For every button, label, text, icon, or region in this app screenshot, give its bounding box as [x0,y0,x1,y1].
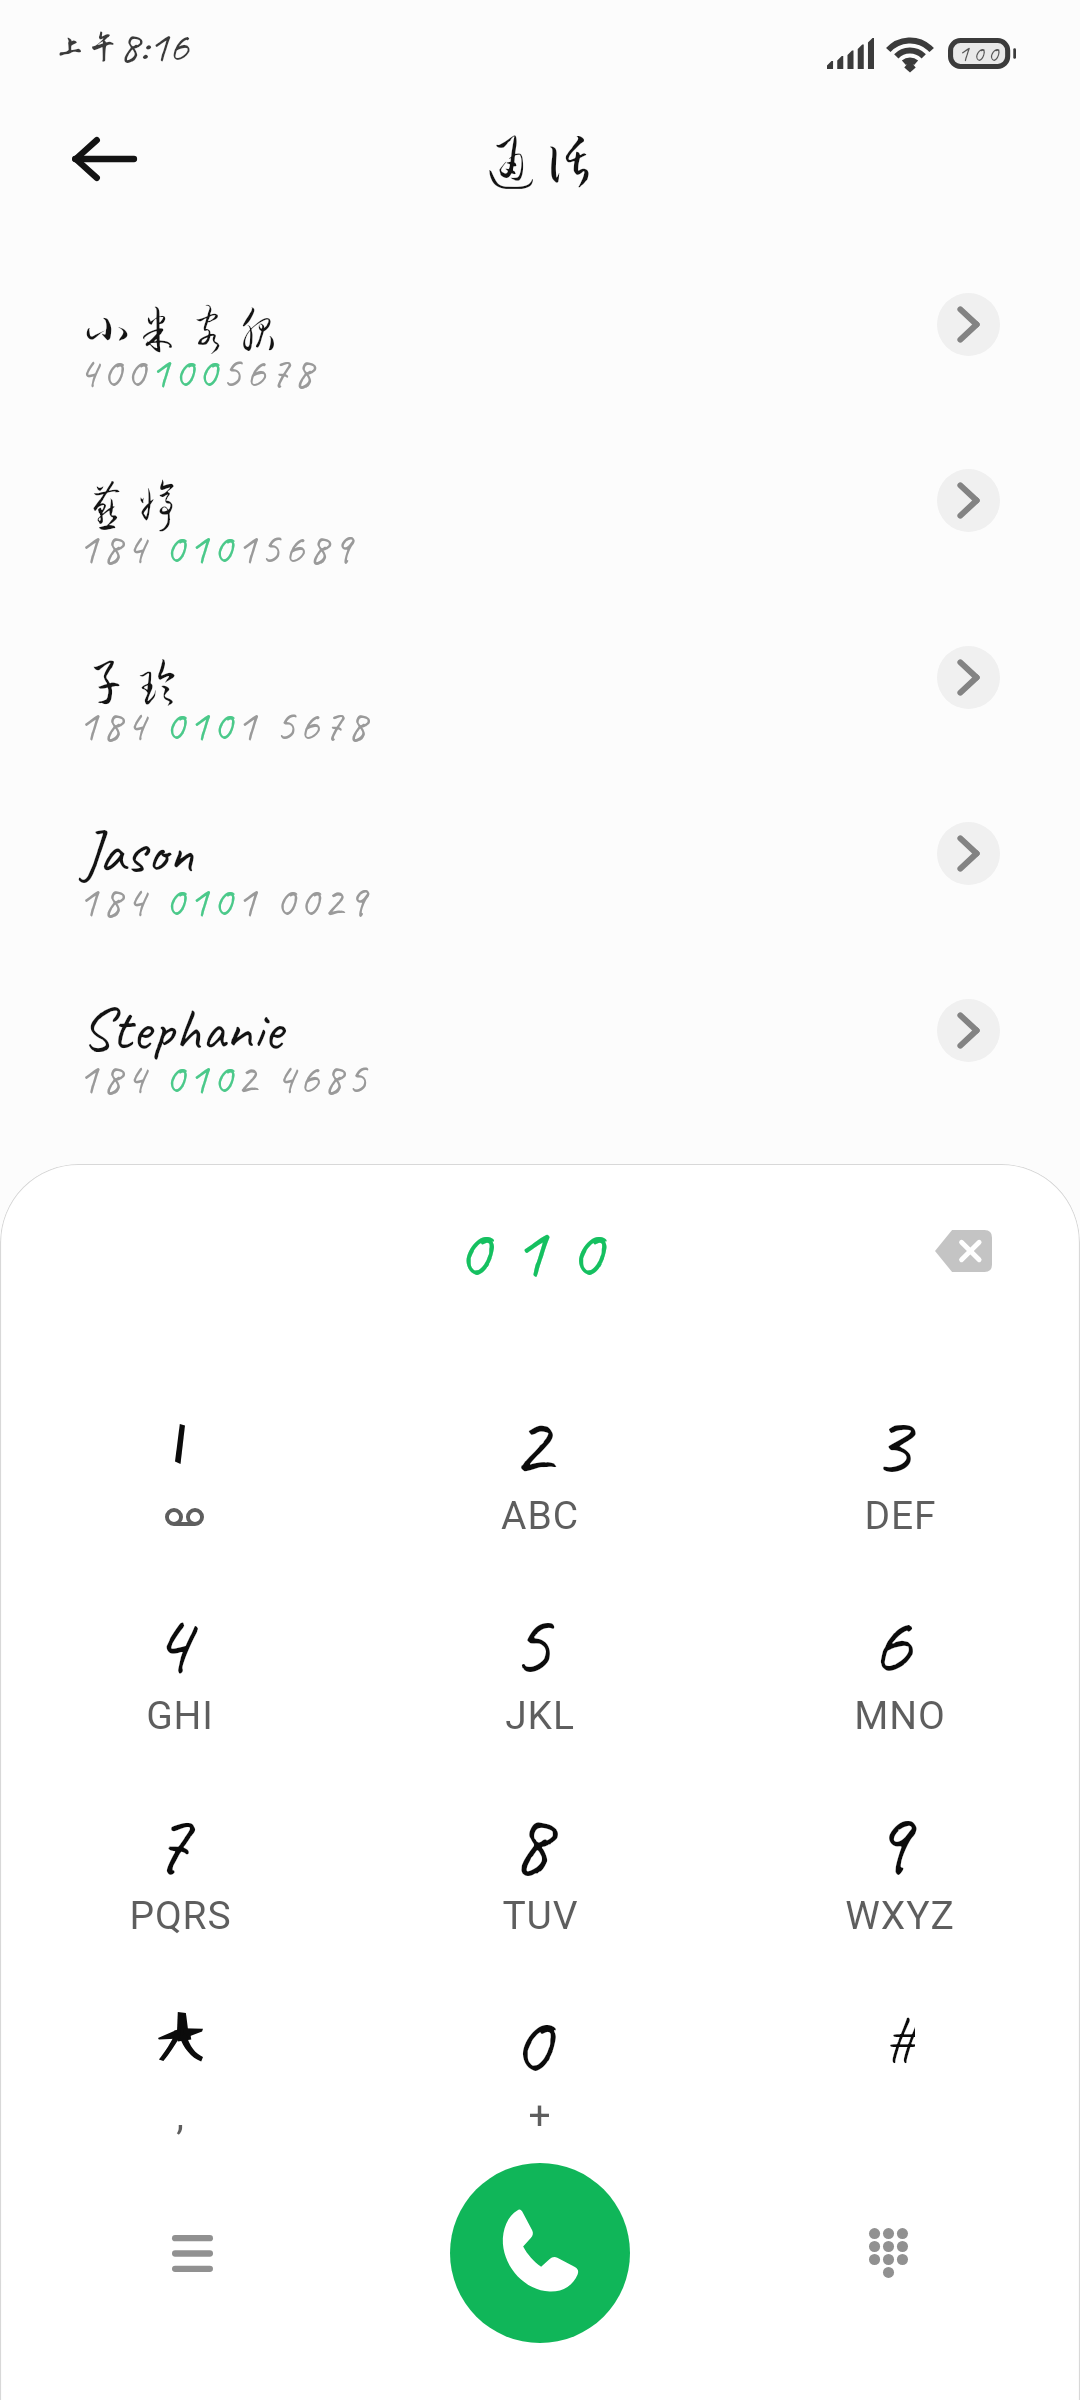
button[interactable]: 子玲 [0,653,1080,827]
staticText: 0 [510,1987,551,2100]
button[interactable]: Open 燕婷 [937,469,1000,532]
button[interactable]: 4 GHI [0,1547,360,1747]
button[interactable]: 2 ABC [360,1347,720,1547]
staticText: 184 0101 0029 [78,874,371,929]
staticText: 上午8:16 [54,18,189,75]
button[interactable]: 燕婷 [0,476,1080,650]
button[interactable]: Open Stephanie [937,999,1000,1062]
button[interactable]: Open 子玲 [937,646,1000,709]
button[interactable]: 1 voicemail [0,1347,360,1547]
staticText: WXYZ [845,1893,955,1939]
staticText: 7 [150,1787,191,1900]
staticText: JKL [505,1693,575,1739]
staticText: DEF [864,1493,937,1539]
staticText: 子玲 [81,655,183,705]
button[interactable]: Star key [0,1947,360,2147]
staticText: , [176,2093,185,2139]
button[interactable]: 3 DEF [720,1347,1080,1547]
button[interactable]: Jason [0,829,1080,1003]
staticText: 184 01015689 [78,521,357,576]
button[interactable]: Open 小米客服 [937,293,1000,356]
staticText: 3 [870,1387,911,1500]
staticText: 4001005678 [78,345,318,400]
staticText: 小米客服 [81,302,284,352]
staticText: 6 [870,1587,911,1700]
staticText: 燕婷 [81,478,183,528]
staticText: Jason [81,814,194,890]
button[interactable]: 8 TUV [360,1747,720,1947]
button[interactable]: 0 + [360,1947,720,2147]
staticText: TUV [502,1893,579,1939]
staticText: 通话 [482,131,599,188]
staticText: 4 [150,1587,191,1700]
button[interactable]: 5 JKL [360,1547,720,1747]
button[interactable]: 9 WXYZ [720,1747,1080,1947]
staticText: 010 [456,1204,625,1299]
staticText: 100 [958,38,1003,68]
button[interactable]: Pound key [720,1947,1080,2147]
staticText: 2 [510,1387,551,1500]
staticText: # [886,2007,915,2064]
staticText: MNO [854,1693,946,1739]
button[interactable]: 7 PQRS [0,1747,360,1947]
staticText: Stephanie [81,991,283,1067]
staticText: 8 [510,1787,551,1900]
button[interactable]: 6 MNO [720,1547,1080,1747]
staticText: 184 0102 4685 [78,1051,371,1106]
button[interactable]: Stephanie [0,1006,1080,1180]
staticText: GHI [146,1693,214,1739]
staticText: 184 0101 5678 [78,698,371,753]
button[interactable]: Dialpad [813,2178,963,2328]
button[interactable]: Back [24,105,168,213]
button[interactable]: Call history [117,2178,267,2328]
button[interactable]: 小米客服 [0,300,1080,474]
staticText: 9 [870,1787,911,1900]
button[interactable]: Delete [903,1191,1023,1311]
staticText: PQRS [129,1893,232,1939]
staticText: 5 [510,1587,551,1700]
staticText: + [528,2093,552,2139]
staticText: ABC [501,1493,579,1539]
button[interactable]: Call [450,2163,630,2343]
button[interactable]: Open Jason [937,822,1000,885]
